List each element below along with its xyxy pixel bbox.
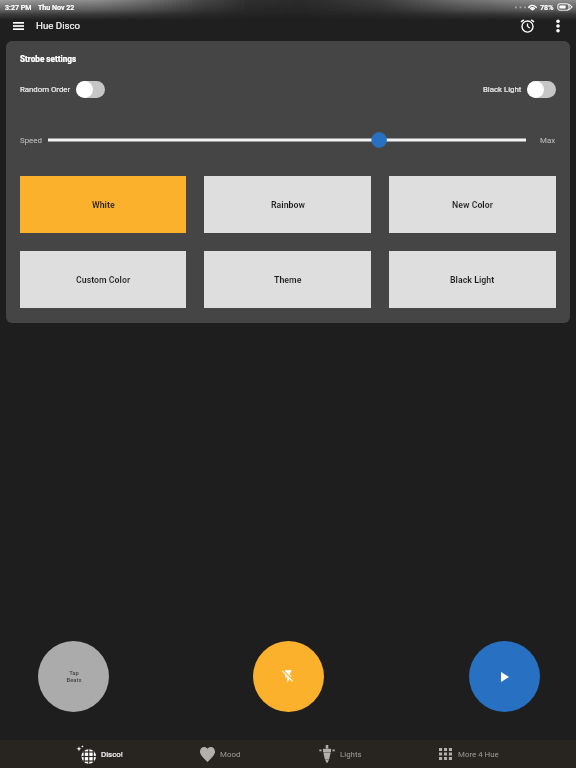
button[interactable]: Tap Beats bbox=[38, 641, 109, 712]
staticText: Custom Color bbox=[76, 275, 131, 285]
staticText: Tap Beats bbox=[66, 670, 82, 684]
staticText: Black Light bbox=[483, 85, 522, 94]
staticText: Disco! bbox=[101, 750, 123, 759]
button[interactable]: Play bbox=[469, 641, 540, 712]
button[interactable]: Theme bbox=[204, 251, 371, 308]
button[interactable]: Random Order bbox=[20, 81, 105, 98]
staticText: Speed bbox=[20, 136, 42, 145]
staticText: Black Light bbox=[450, 275, 495, 285]
button[interactable]: Strobe off bbox=[253, 641, 324, 712]
staticText: 78% bbox=[540, 3, 554, 11]
button[interactable]: Custom Color bbox=[20, 251, 186, 308]
button[interactable]: White bbox=[20, 176, 186, 233]
staticText: Theme bbox=[274, 275, 302, 285]
staticText: Random Order bbox=[20, 85, 71, 94]
button[interactable]: More 4 Hue bbox=[439, 740, 499, 768]
button[interactable]: Black Light bbox=[483, 81, 556, 98]
staticText: New Color bbox=[452, 200, 493, 210]
staticText: White bbox=[92, 200, 115, 210]
button[interactable]: Black Light bbox=[389, 251, 556, 308]
staticText: Max bbox=[540, 136, 556, 145]
staticText: Lights bbox=[340, 750, 362, 759]
staticText: Thu Nov 22 bbox=[38, 3, 75, 11]
button[interactable]: Rainbow bbox=[204, 176, 371, 233]
button[interactable]: Open navigation drawer bbox=[6, 14, 30, 38]
button[interactable]: Sleep timer bbox=[514, 13, 540, 38]
button[interactable]: New Color bbox=[389, 176, 556, 233]
staticText: Mood bbox=[220, 750, 241, 759]
button[interactable]: More options bbox=[546, 14, 570, 38]
button[interactable]: Strobe speed bbox=[48, 131, 526, 149]
staticText: 3:27 PM bbox=[5, 3, 32, 11]
button[interactable]: Disco! bbox=[77, 740, 123, 768]
button[interactable]: Lights bbox=[319, 740, 362, 768]
staticText: Hue Disco bbox=[36, 20, 81, 31]
staticText: More 4 Hue bbox=[458, 750, 499, 759]
staticText: Rainbow bbox=[271, 200, 305, 210]
button[interactable]: Mood bbox=[200, 740, 241, 768]
staticText: Strobe settings bbox=[20, 54, 77, 64]
